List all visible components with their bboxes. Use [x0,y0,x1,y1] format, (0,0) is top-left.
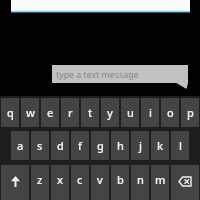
button[interactable]: Shift [1,165,29,200]
button[interactable]: r [61,98,79,127]
button[interactable]: i [141,98,159,127]
button[interactable]: m [151,165,169,200]
button[interactable]: w [21,98,39,127]
button[interactable]: c [71,165,89,200]
button[interactable]: Backspace [171,165,199,200]
button[interactable]: b [111,165,129,200]
button[interactable]: n [131,165,149,200]
staticText: y [107,105,113,120]
button[interactable]: k [151,131,169,160]
staticText: e [47,105,54,120]
button[interactable]: l [171,131,189,160]
staticText: m [155,172,166,187]
staticText: f [78,138,82,153]
button[interactable]: a [11,131,29,160]
staticText: a [17,138,24,153]
button[interactable]: q [1,98,19,127]
staticText: g [97,138,104,153]
staticText: z [37,172,43,187]
button[interactable]: z [31,165,49,200]
staticText: s [37,138,43,153]
staticText: t [88,105,93,120]
button[interactable]: s [31,131,49,160]
staticText: n [137,172,144,187]
button[interactable]: u [121,98,139,127]
staticText: v [97,172,103,187]
button[interactable]: g [91,131,109,160]
staticText: q [7,105,14,120]
button[interactable]: f [71,131,89,160]
staticText: d [57,138,64,153]
button[interactable]: type a text message [52,65,188,89]
staticText: w [26,105,35,120]
staticText: x [57,172,63,187]
staticText: j [139,138,142,153]
button[interactable]: o [161,98,179,127]
staticText: o [167,105,174,120]
staticText: b [117,172,124,187]
staticText: k [157,138,164,153]
button[interactable]: x [51,165,69,200]
button[interactable]: e [41,98,59,127]
button[interactable]: v [91,165,109,200]
staticText: h [117,138,124,153]
staticText: i [149,105,152,120]
staticText: u [127,105,134,120]
staticText: r [68,105,73,120]
staticText: c [77,172,83,187]
button[interactable]: y [101,98,119,127]
button[interactable]: p [181,98,199,127]
button[interactable]: h [111,131,129,160]
staticText: l [179,138,182,153]
button[interactable]: j [131,131,149,160]
button[interactable]: d [51,131,69,160]
staticText: type a text message [56,69,139,81]
button[interactable]: t [81,98,99,127]
staticText: p [187,105,194,120]
